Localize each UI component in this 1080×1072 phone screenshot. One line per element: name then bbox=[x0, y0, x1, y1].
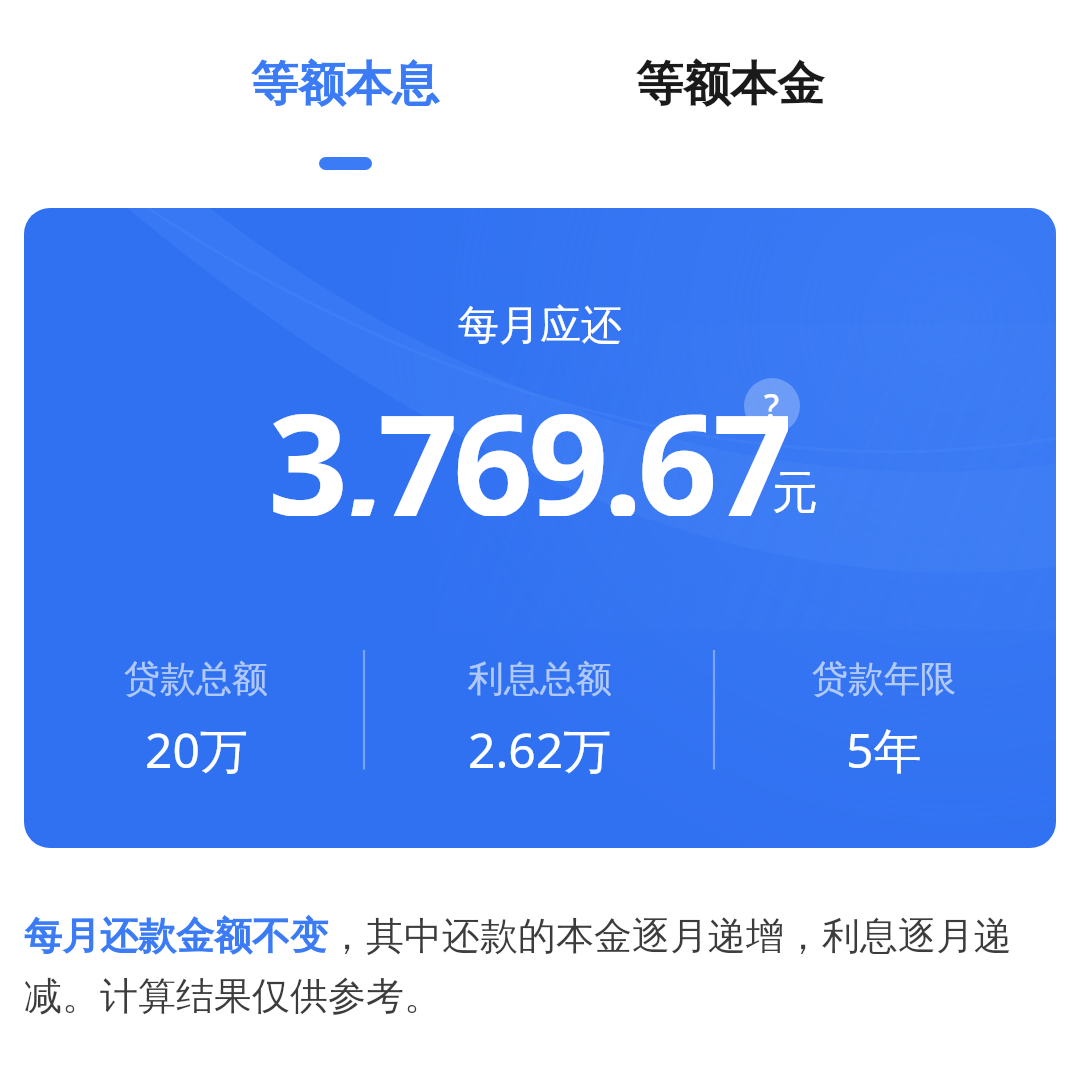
button[interactable]: 贷款总额 bbox=[24, 650, 368, 780]
staticText: 3,769.67 bbox=[268, 366, 788, 516]
staticText: 每月还款金额不变，其中还款的本金逐月递增，利息逐月递减。计算结果仅供参考。 bbox=[24, 912, 1056, 1020]
button[interactable]: 贷款年限 bbox=[712, 650, 1056, 780]
staticText: 等额本金 bbox=[636, 55, 824, 114]
staticText: 等额本息 bbox=[251, 55, 439, 114]
staticText: 每月应还 bbox=[458, 300, 622, 352]
button[interactable]: 每月应还 bbox=[24, 208, 1056, 848]
staticText: 元 bbox=[772, 464, 818, 522]
staticText: 贷款年限 bbox=[812, 656, 956, 701]
button[interactable]: 说明 bbox=[744, 378, 800, 434]
staticText: 20万 bbox=[145, 717, 248, 780]
button[interactable]: 利息总额 bbox=[368, 650, 712, 780]
button[interactable]: 等额本息 bbox=[150, 38, 540, 130]
staticText: 2.62万 bbox=[468, 717, 612, 780]
staticText: 5年 bbox=[846, 717, 922, 780]
button[interactable]: 等额本金 bbox=[535, 38, 925, 130]
staticText: 利息总额 bbox=[468, 656, 612, 701]
staticText: 贷款总额 bbox=[124, 656, 268, 701]
staticText: ? bbox=[764, 383, 780, 429]
